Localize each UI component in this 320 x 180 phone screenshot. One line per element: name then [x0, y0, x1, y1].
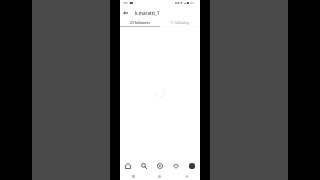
button[interactable]: Home — [120, 158, 136, 172]
button[interactable]: Recent apps — [120, 172, 146, 180]
staticText: k.maratti_1 — [135, 10, 160, 16]
button[interactable]: Back — [120, 8, 135, 18]
button[interactable]: Home — [146, 172, 173, 180]
button[interactable]: 11 following — [160, 18, 200, 26]
button[interactable]: 23 followers — [120, 18, 160, 26]
staticText: 23 followers — [130, 20, 150, 25]
staticText: 11 following — [170, 20, 190, 25]
button[interactable]: Back — [173, 172, 200, 180]
button[interactable]: Likes — [168, 158, 184, 172]
button[interactable]: Reels — [152, 158, 168, 172]
button[interactable]: Profile — [184, 158, 200, 172]
button[interactable]: Search — [136, 158, 152, 172]
